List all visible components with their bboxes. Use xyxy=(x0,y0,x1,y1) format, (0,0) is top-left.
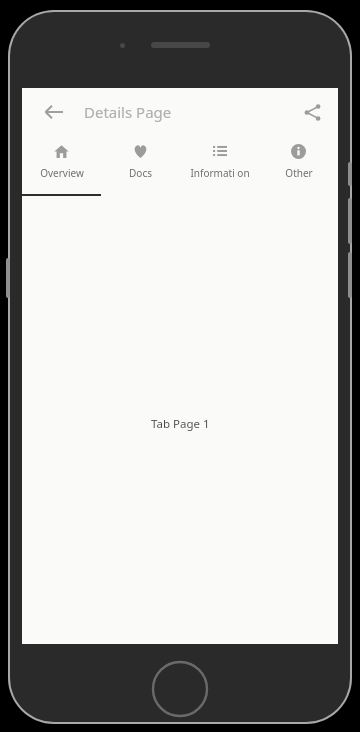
button[interactable]: Other xyxy=(259,136,338,196)
staticText: Informati on xyxy=(190,166,250,180)
staticText: Docs xyxy=(129,166,152,180)
button[interactable]: Docs xyxy=(101,136,180,196)
staticText: Overview xyxy=(40,166,84,180)
button[interactable]: Informati on xyxy=(180,136,259,196)
staticText: Details Page xyxy=(84,102,172,122)
staticText: Tab Page 1 xyxy=(151,416,210,432)
button[interactable]: Share xyxy=(290,90,334,134)
button[interactable]: Overview xyxy=(22,136,101,196)
button[interactable]: Back xyxy=(32,90,76,134)
staticText: Other xyxy=(285,166,313,180)
